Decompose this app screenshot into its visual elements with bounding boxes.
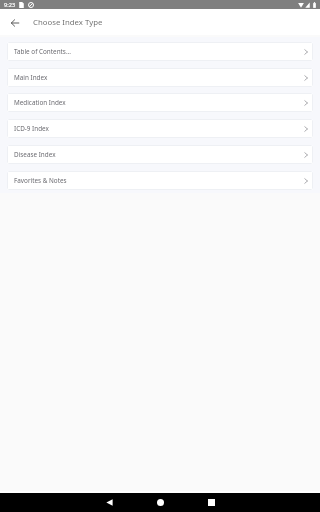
staticText: Favorites & Notes — [14, 176, 67, 185]
button[interactable]: Back — [96, 493, 122, 512]
staticText: Choose Index Type — [33, 17, 103, 28]
button[interactable]: Main Index — [7, 68, 313, 87]
button[interactable]: Disease Index — [7, 145, 313, 164]
button[interactable]: Recents — [198, 493, 224, 512]
button[interactable]: Favorites & Notes — [7, 171, 313, 190]
staticText: Main Index — [14, 73, 48, 82]
button[interactable]: Medication Index — [7, 93, 313, 112]
staticText: Table of Contents... — [14, 47, 71, 56]
button[interactable]: Table of Contents... — [7, 42, 313, 61]
button[interactable]: Home — [147, 493, 173, 512]
button[interactable]: ICD-9 Index — [7, 119, 313, 138]
staticText: Medication Index — [14, 98, 66, 107]
staticText: 9:23 — [4, 1, 16, 9]
staticText: ICD-9 Index — [14, 124, 49, 133]
staticText: Disease Index — [14, 150, 56, 159]
button[interactable]: Back — [5, 13, 25, 33]
